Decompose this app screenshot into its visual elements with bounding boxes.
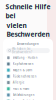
button[interactable]: Kopfschmerzen xyxy=(3,61,53,67)
staticText: Erkältung · Husten xyxy=(13,56,38,59)
staticText: Anwendungen xyxy=(17,42,39,46)
staticText: Rückenschmerzen xyxy=(13,75,37,78)
staticText: Kopfschmerzen xyxy=(13,62,34,66)
staticText: Haut & Haare xyxy=(13,87,30,90)
button[interactable]: Haut & Haare xyxy=(3,86,53,92)
button[interactable]: Rückenschmerzen xyxy=(3,73,53,79)
staticText: Wo haben Sie Beschwerden? xyxy=(12,47,32,54)
button[interactable]: Magen & Darm xyxy=(3,67,53,73)
staticText: Allergie xyxy=(13,81,25,84)
button[interactable]: Schlafstörungen xyxy=(3,92,53,98)
staticText: Schnelle Hilfe bei xyxy=(5,2,50,20)
button[interactable]: Erkältung · Husten xyxy=(3,55,53,61)
button[interactable]: Allergie xyxy=(3,79,53,86)
staticText: Magen & Darm xyxy=(13,68,32,72)
button[interactable]: Wo haben Sie Beschwerden? xyxy=(6,48,50,53)
button[interactable]: Stress · Erschöpfung xyxy=(3,98,53,100)
staticText: Stress · Erschöpfung xyxy=(13,99,40,100)
staticText: vielen Beschwerden xyxy=(6,21,49,39)
staticText: Schlafstörungen xyxy=(13,93,35,97)
